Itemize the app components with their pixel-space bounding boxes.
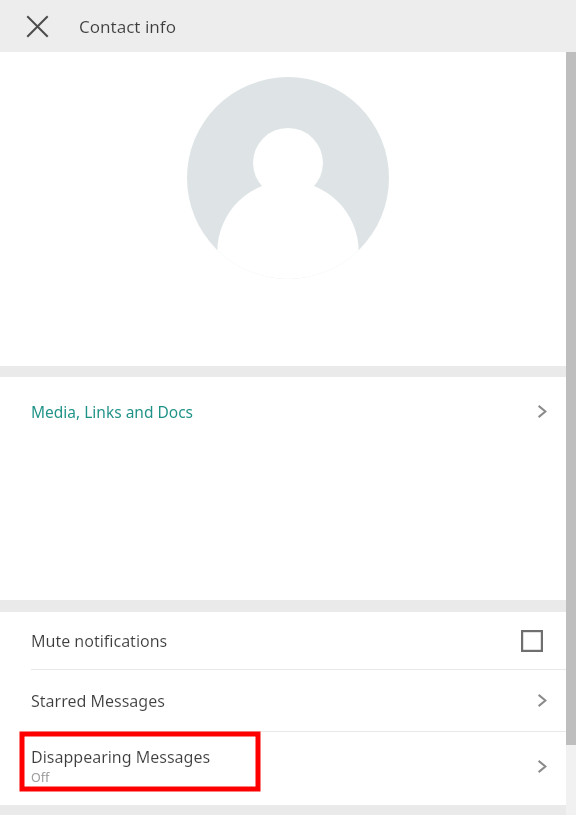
staticText: Off [31, 769, 50, 786]
button[interactable]: Disappearing Messages [0, 732, 576, 800]
staticText: Starred Messages [31, 690, 165, 712]
button[interactable]: Mute notifications [0, 612, 576, 669]
button[interactable]: Close [17, 6, 57, 46]
staticText: Media, Links and Docs [31, 401, 194, 422]
staticText: Disappearing Messages [31, 746, 211, 768]
button[interactable]: Media, Links and Docs [0, 377, 576, 446]
button[interactable]: Starred Messages [0, 670, 576, 731]
staticText: Contact info [79, 15, 176, 38]
staticText: Mute notifications [31, 630, 168, 652]
